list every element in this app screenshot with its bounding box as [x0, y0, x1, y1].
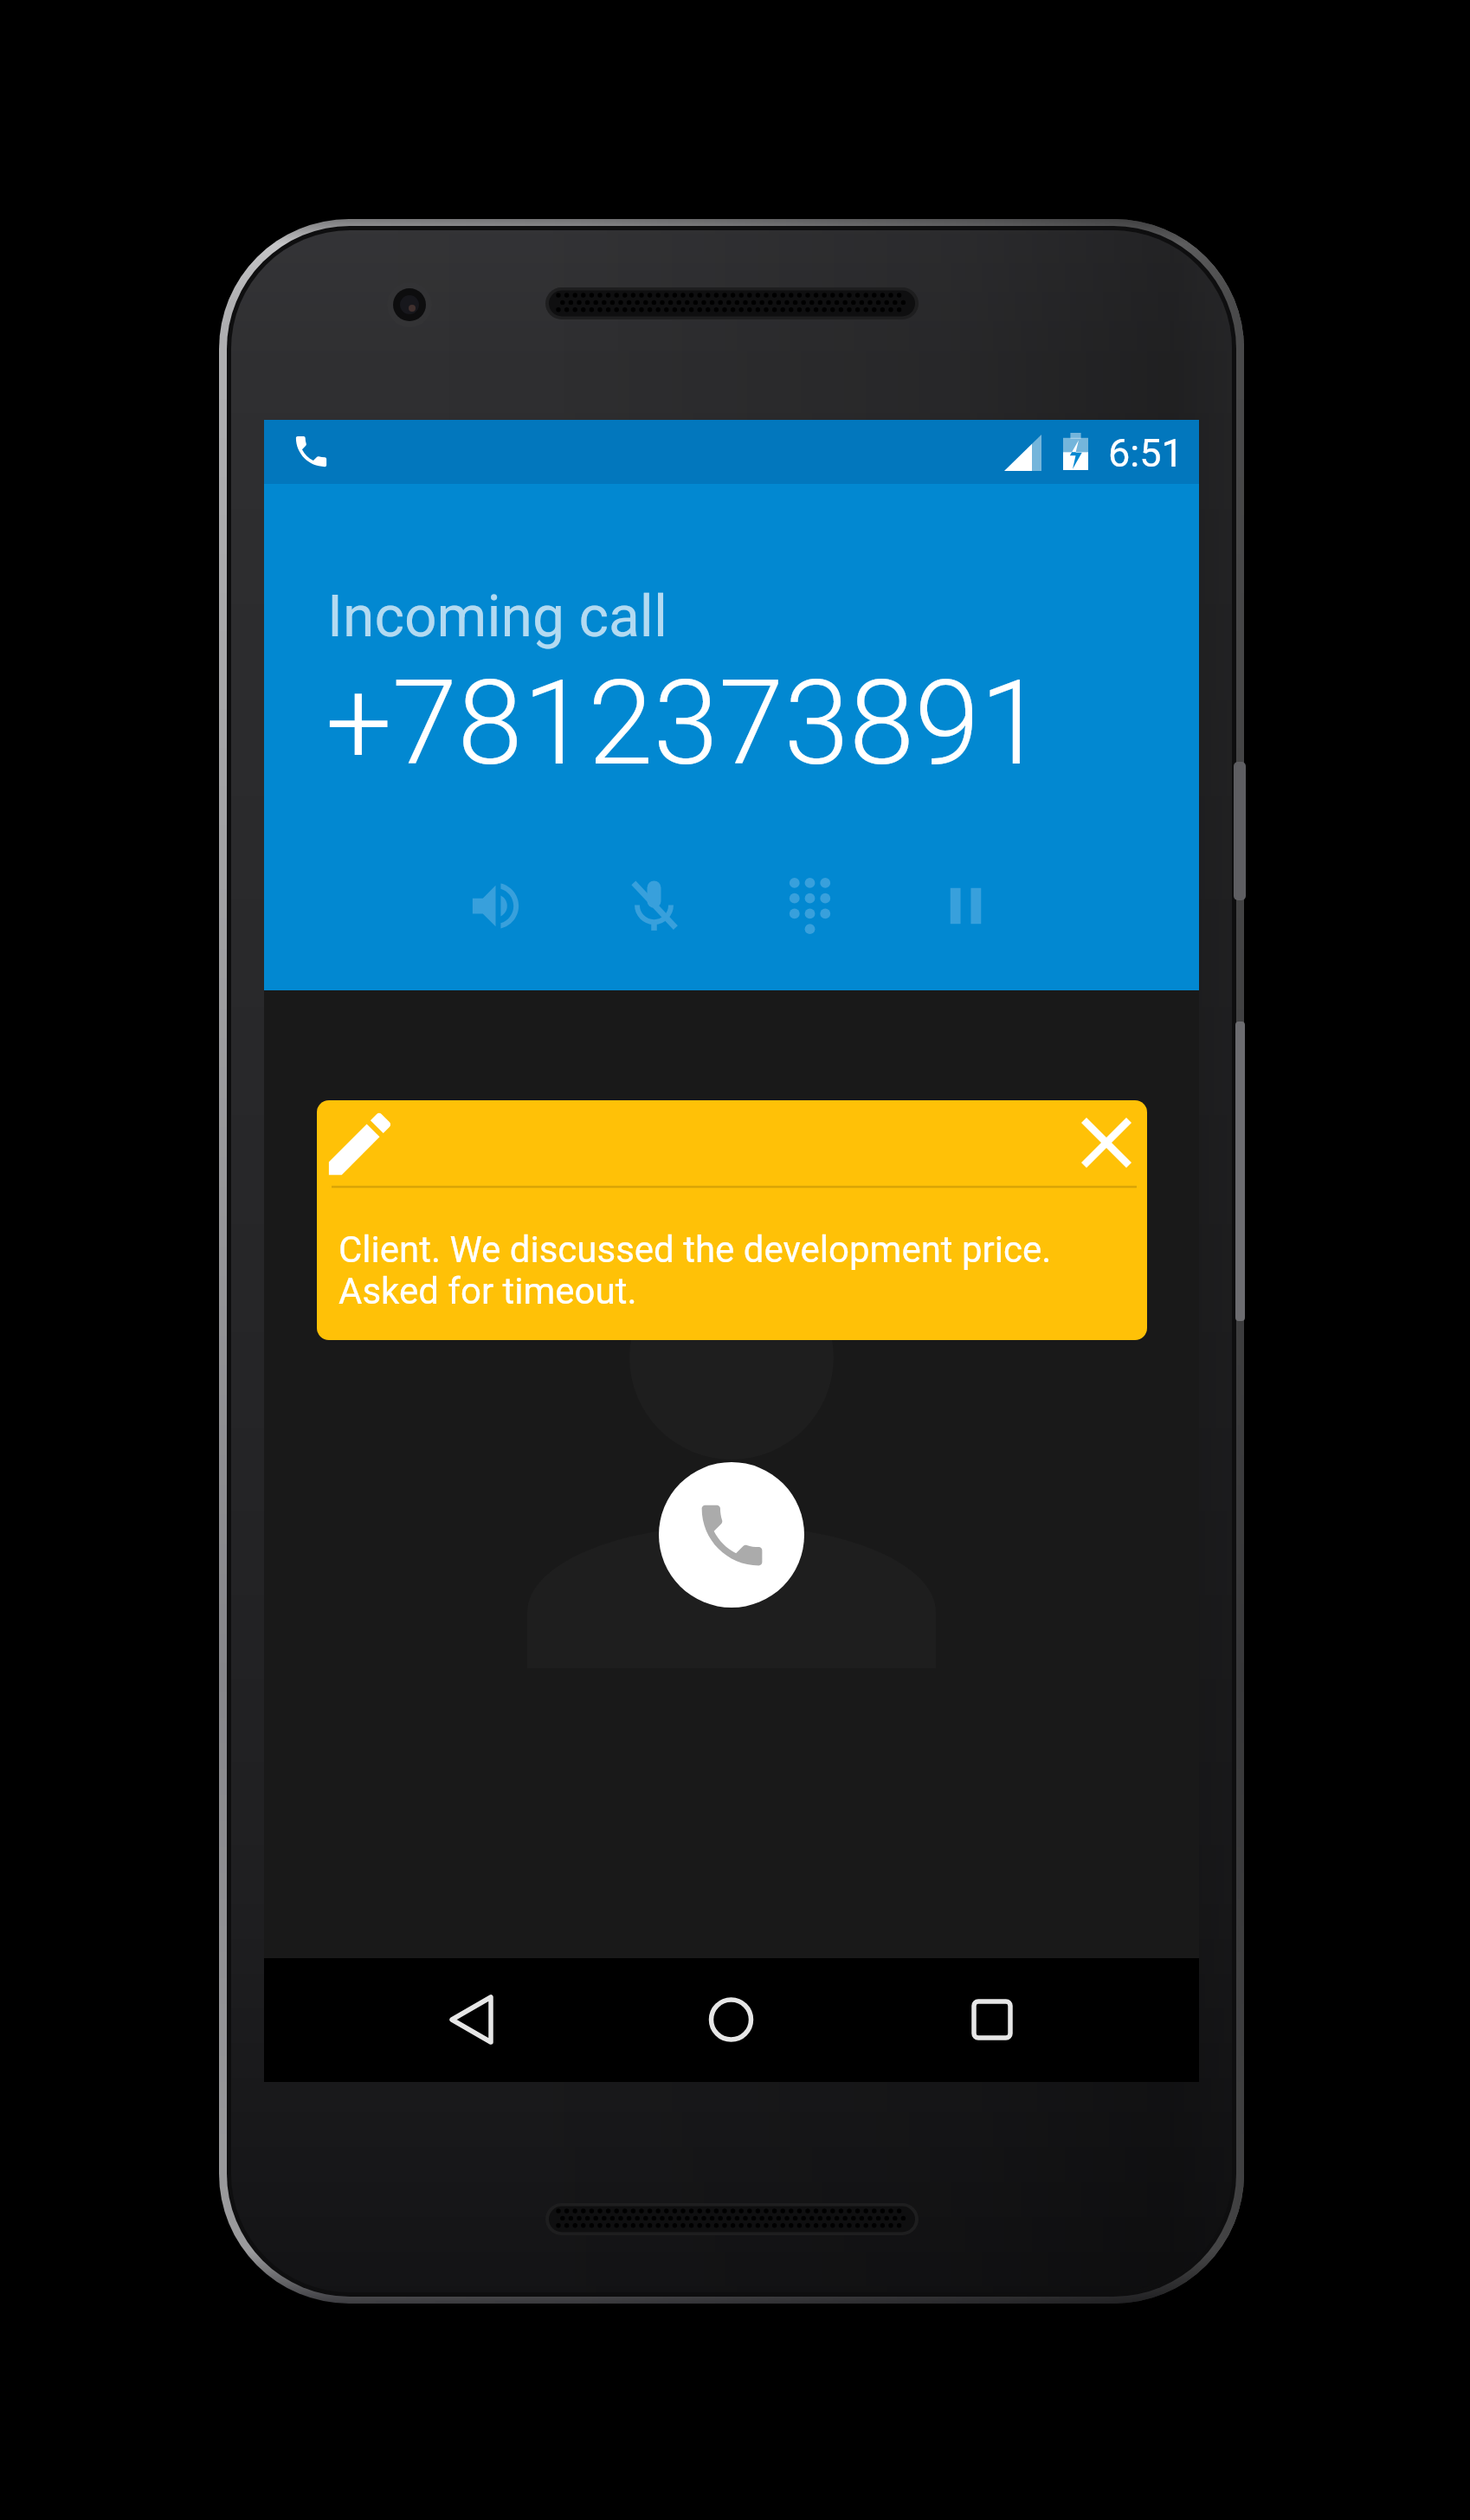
- staticText: Client. We discussed the development pri…: [338, 1228, 1100, 1312]
- button[interactable]: Answer call: [659, 1462, 804, 1608]
- button[interactable]: Recents: [919, 1958, 1065, 2082]
- button[interactable]: Speaker: [447, 857, 544, 954]
- button[interactable]: Close: [1082, 1118, 1131, 1167]
- button[interactable]: Dialpad: [761, 857, 858, 954]
- button[interactable]: Hold: [917, 857, 1014, 954]
- staticText: +7812373891: [326, 654, 1046, 792]
- button[interactable]: Back: [399, 1958, 545, 2082]
- staticText: 6:51: [1108, 430, 1183, 476]
- button[interactable]: Close: [317, 1100, 1147, 1340]
- button[interactable]: Home: [658, 1958, 803, 2082]
- button[interactable]: Mute: [605, 857, 702, 954]
- staticText: Incoming call: [327, 583, 667, 650]
